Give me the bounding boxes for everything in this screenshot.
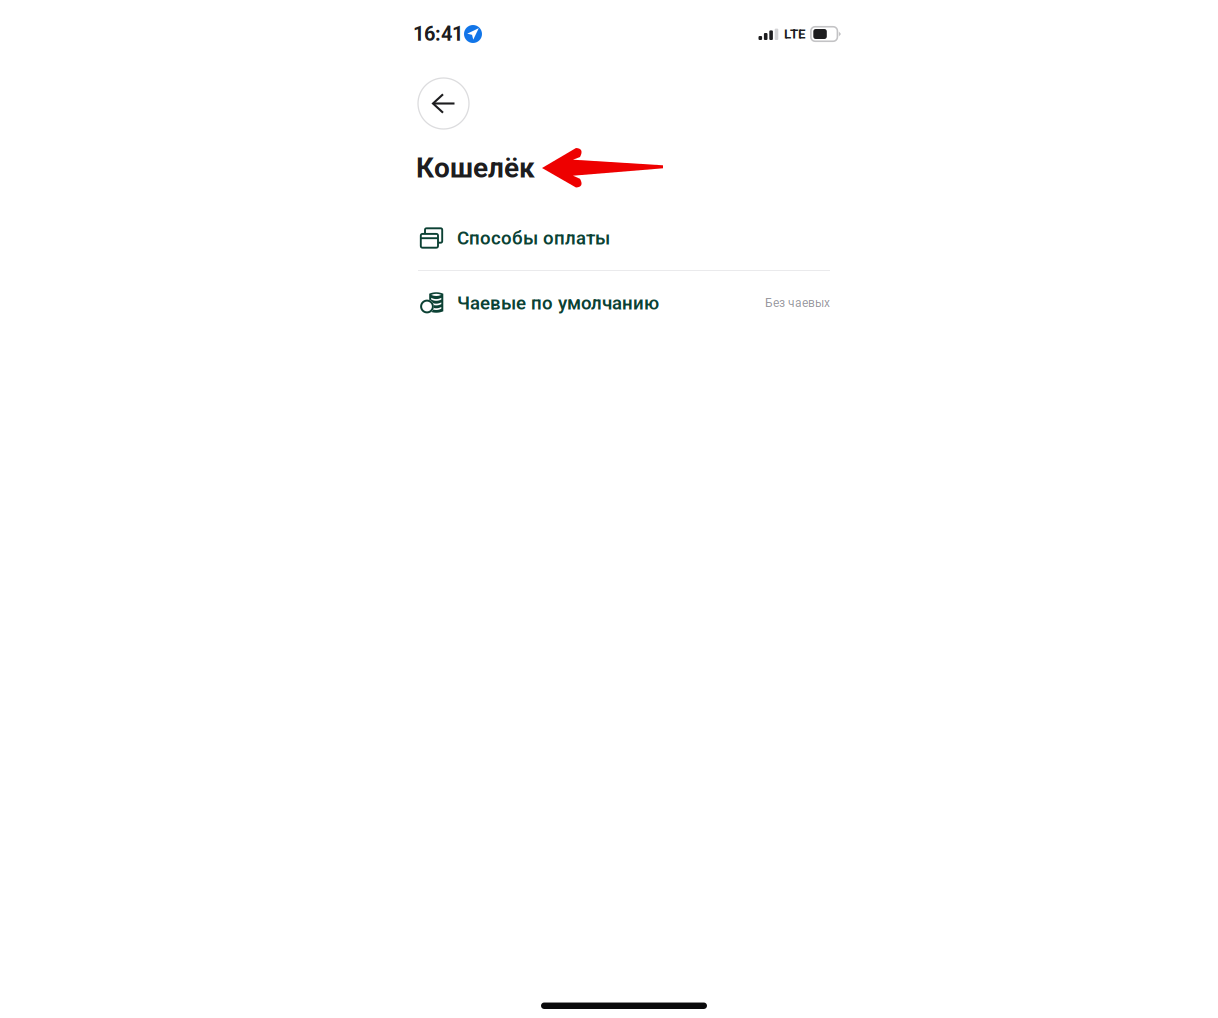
staticText: Кошелёк [416, 152, 535, 184]
button[interactable]: Назад [418, 78, 469, 129]
button[interactable]: Чаевые по умолчанию [418, 271, 830, 335]
staticText: LTE [784, 26, 806, 42]
staticText: Чаевые по умолчанию [457, 292, 659, 314]
staticText: 16:41 [413, 22, 463, 46]
staticText: Способы оплаты [457, 227, 610, 249]
staticText: Без чаевых [765, 296, 830, 310]
button[interactable]: Способы оплаты [418, 206, 830, 270]
